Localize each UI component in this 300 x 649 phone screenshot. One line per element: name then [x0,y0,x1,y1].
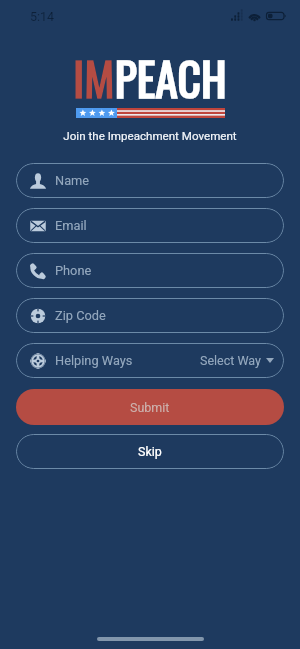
button[interactable]: Helping Ways [16,343,284,378]
other: Cellular signal [231,12,244,21]
button[interactable]: Skip [16,434,284,469]
staticText: 5:14 [30,9,55,24]
staticText: Join the Impeachment Movement [63,129,237,143]
staticText: Phone [55,263,92,278]
staticText: Email [55,218,87,233]
button[interactable]: Submit [16,389,284,425]
staticText: Name [55,173,90,188]
staticText: Zip Code [55,308,106,323]
button[interactable]: Phone [16,253,284,288]
staticText: Helping Ways [55,353,133,368]
button[interactable]: Email [16,208,284,243]
other: Battery [266,11,285,21]
other: Wi-Fi [248,11,261,21]
staticText: Skip [138,444,162,459]
button[interactable]: Zip Code [16,298,284,333]
staticText: Select Way [200,353,261,368]
button[interactable]: Name [16,163,284,198]
staticText: Submit [130,400,170,415]
